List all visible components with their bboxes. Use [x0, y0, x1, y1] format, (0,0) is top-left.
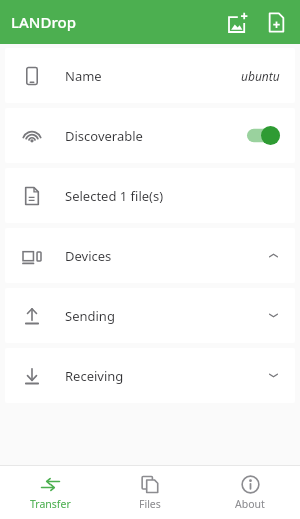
- button[interactable]: Selected 1 file(s): [5, 168, 295, 223]
- staticText: About: [235, 497, 265, 511]
- button[interactable]: Add file: [257, 3, 295, 41]
- staticText: Name: [65, 67, 102, 85]
- button[interactable]: Transfer: [0, 466, 100, 519]
- button[interactable]: Add image: [219, 3, 257, 41]
- button[interactable]: Name: [5, 48, 295, 103]
- staticText: LANDrop: [11, 12, 76, 32]
- staticText: Files: [139, 497, 161, 511]
- button[interactable]: Discoverable: [247, 126, 280, 145]
- staticText: Sending: [65, 307, 115, 325]
- button[interactable]: Discoverable: [5, 108, 295, 163]
- staticText: Discoverable: [65, 127, 143, 145]
- button[interactable]: Devices: [5, 228, 295, 283]
- button[interactable]: Receiving: [5, 348, 295, 403]
- button[interactable]: Files: [100, 466, 200, 519]
- button[interactable]: About: [200, 466, 300, 519]
- staticText: Selected 1 file(s): [65, 187, 164, 205]
- staticText: ubuntu: [241, 68, 280, 84]
- staticText: Receiving: [65, 367, 124, 385]
- staticText: Devices: [65, 247, 112, 265]
- staticText: Transfer: [30, 497, 71, 511]
- button[interactable]: Sending: [5, 288, 295, 343]
